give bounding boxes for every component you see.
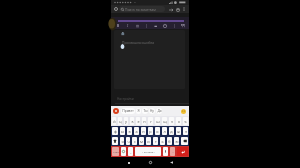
button[interactable]: г [148,117,153,125]
button[interactable]: Enter [177,147,188,156]
button[interactable]: B [116,23,121,28]
staticText: л [163,129,166,134]
staticText: и [147,139,150,144]
staticText: э [185,129,187,134]
staticText: ш [156,119,160,124]
button[interactable]: д [169,127,174,135]
button[interactable]: До [156,108,162,114]
button[interactable]: ц [118,117,122,125]
staticText: ¶¶ [181,24,186,28]
button[interactable]: | [144,23,149,28]
button[interactable]: Shift [112,137,118,145]
staticText: м [140,139,143,144]
button[interactable]: ▬ [153,23,158,28]
button[interactable]: м [139,137,144,145]
button[interactable]: Recent apps [125,159,132,166]
button[interactable]: й [112,117,116,125]
staticText: с [134,139,136,144]
staticText: о [156,129,159,134]
button[interactable]: Home [147,159,154,166]
staticText: Произошла ошибка [122,40,155,44]
button[interactable]: Ты [142,108,148,114]
staticText: ‹ Русский › [142,150,155,153]
staticText: Ну [150,109,154,113]
button[interactable]: з [169,117,174,125]
button[interactable]: Sort [167,6,174,13]
button[interactable]: а [134,127,139,135]
button[interactable]: ы [120,127,125,135]
staticText: е [137,119,140,124]
staticText: ъ [184,119,187,124]
button[interactable]: е [136,117,140,125]
staticText: у [125,119,127,124]
button[interactable]: п [141,127,146,135]
button[interactable]: ?123 [112,147,119,156]
button[interactable]: Backspace [181,137,188,145]
staticText: а [135,129,138,134]
staticText: щ [163,119,167,124]
button[interactable]: н [142,117,146,125]
staticText: р [149,129,152,134]
button[interactable]: ъ [183,117,188,125]
button[interactable]: Keyboard options [113,108,119,114]
button[interactable]: ш [155,117,160,125]
button[interactable]: т [153,137,158,145]
staticText: ▬ [154,24,158,28]
button[interactable]: э [183,127,188,135]
button[interactable]: ж [176,127,181,135]
button[interactable]: в [127,127,132,135]
staticText: До [157,109,162,113]
staticText: , [130,149,132,154]
button[interactable]: . [170,147,175,156]
button[interactable]: о [155,127,160,135]
staticText: т [155,139,157,144]
button[interactable]: я [120,137,124,145]
button[interactable]: и [146,137,151,145]
button[interactable]: I [125,23,130,28]
button[interactable]: | [172,23,177,28]
button[interactable]: ‹ Русский › [135,147,161,156]
staticText: п [142,129,145,134]
button[interactable]: л [162,127,167,135]
button[interactable]: Поиск по заметкам [119,6,165,12]
staticText: ю [175,139,179,144]
button[interactable]: с [132,137,137,145]
button[interactable]: щ [162,117,167,125]
button[interactable]: б [167,137,172,145]
button[interactable]: Navigation menu [113,6,119,12]
button[interactable]: Insert emoji [162,23,167,28]
staticText: B [117,24,120,28]
button[interactable]: ф [112,127,118,135]
staticText: х [178,119,180,124]
button[interactable]: Voice input [163,147,168,156]
staticText: б [168,139,171,144]
button[interactable]: Привет [121,108,135,114]
staticText: Ты [143,109,148,113]
button[interactable]: р [148,127,153,135]
button[interactable]: Back [168,159,175,166]
staticText: к [131,119,134,124]
staticText: д [170,129,173,134]
staticText: н [143,119,146,124]
button[interactable]: Account [174,6,181,13]
button[interactable]: Emoji [121,147,126,156]
button[interactable]: ь [160,137,165,145]
button[interactable]: ▤ [135,23,140,28]
staticText: ь [161,139,164,144]
staticText: I [127,24,129,28]
staticText: ы [121,129,124,134]
button[interactable]: Я [136,108,141,114]
button[interactable]: ч [126,137,130,145]
staticText: Настройки [117,97,134,101]
button[interactable]: ¶¶ [181,23,186,28]
staticText: з [171,119,173,124]
button[interactable]: , [128,147,133,156]
staticText: ▤ [136,24,140,28]
button[interactable]: к [130,117,134,125]
button[interactable]: у [124,117,128,125]
staticText: ц [119,119,122,124]
button[interactable]: ю [174,137,179,145]
button[interactable]: More options [181,6,187,12]
button[interactable]: х [176,117,181,125]
button[interactable]: Ну [149,108,155,114]
